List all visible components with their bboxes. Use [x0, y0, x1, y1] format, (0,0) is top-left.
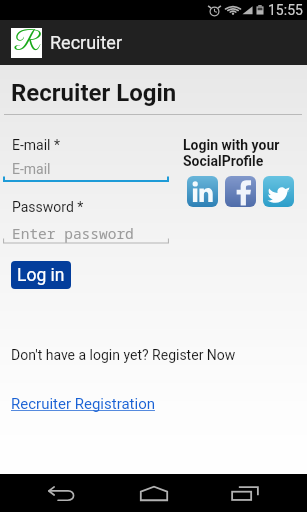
button[interactable]: Log in [11, 261, 71, 289]
button[interactable]: Home [124, 474, 184, 512]
staticText: E-mail [12, 161, 51, 177]
staticText: R [14, 29, 39, 59]
staticText: E-mail * [12, 137, 61, 153]
staticText: 15:55 [268, 2, 303, 18]
button[interactable]: Recruiter Registration [11, 395, 155, 413]
button[interactable]: Facebook [225, 176, 256, 207]
staticText: Enter password [12, 223, 134, 243]
button[interactable]: Back [32, 474, 92, 512]
staticText: Recruiter [50, 32, 122, 53]
staticText: Don't have a login yet? Register Now [11, 347, 236, 363]
staticText: Recruiter Login [11, 79, 177, 107]
staticText: Password * [12, 199, 84, 215]
staticText: Log in [17, 265, 65, 286]
button[interactable]: E-mail [3, 161, 169, 182]
staticText: Login with your SocialProfile [183, 137, 280, 169]
button[interactable]: Twitter [263, 176, 294, 207]
button[interactable]: Enter password [3, 223, 169, 244]
button[interactable]: Recent apps [215, 474, 275, 512]
button[interactable]: LinkedIn [187, 176, 218, 207]
